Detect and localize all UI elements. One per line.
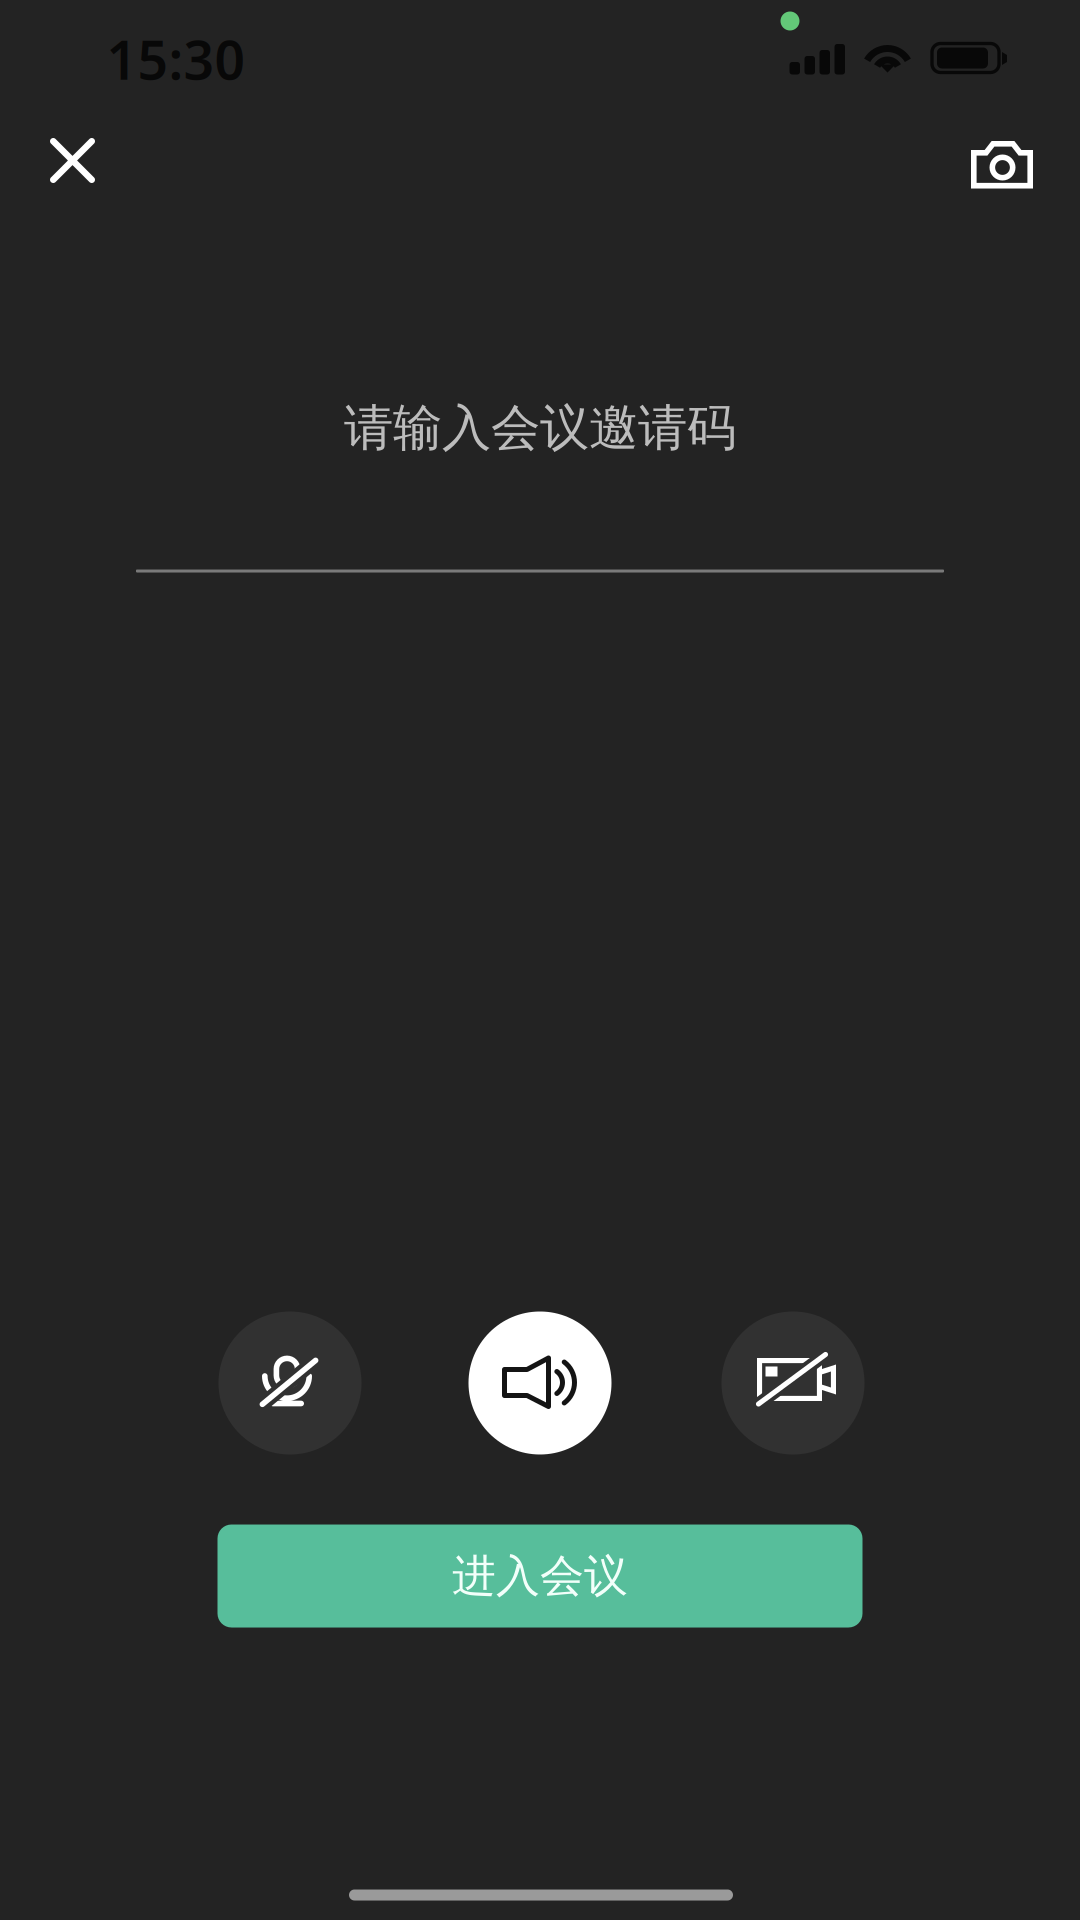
button[interactable]: Mute microphone [218, 1311, 361, 1454]
button[interactable]: Speaker [468, 1311, 611, 1454]
button[interactable]: Close [17, 105, 127, 215]
button[interactable]: 进入会议 [217, 1524, 862, 1627]
button[interactable]: Turn off camera [721, 1311, 864, 1454]
staticText: 请输入会议邀请码 [344, 398, 736, 458]
staticText: 进入会议 [452, 1549, 628, 1603]
staticText: 15:30 [106, 24, 245, 94]
button[interactable]: Switch camera [942, 109, 1062, 219]
